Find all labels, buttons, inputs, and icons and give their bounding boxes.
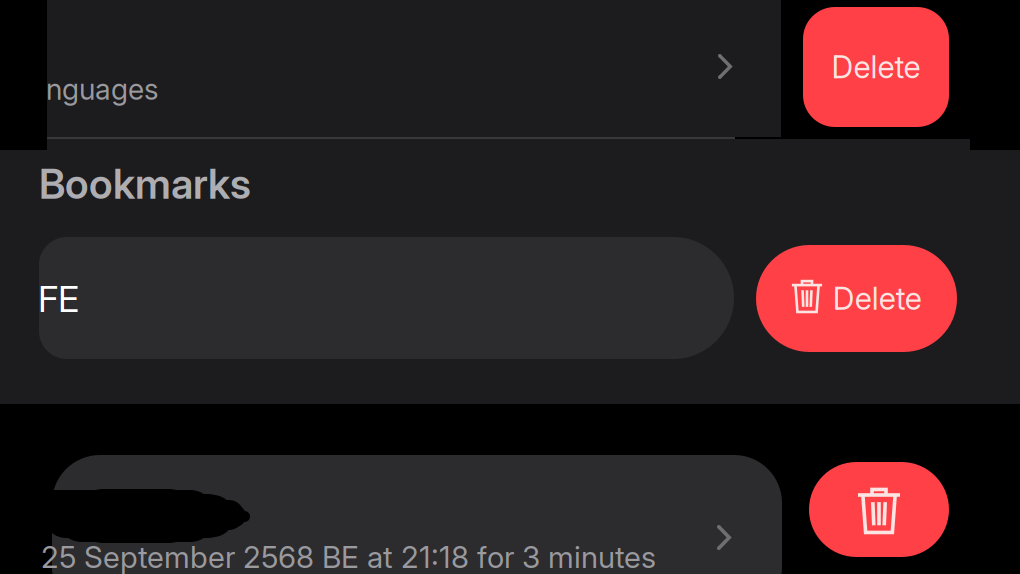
button[interactable]: Delete [809, 462, 949, 557]
staticText: nguages [46, 72, 159, 107]
staticText: Delete [831, 48, 920, 85]
staticText: Bookmarks [39, 159, 251, 209]
staticText: FE [38, 277, 79, 321]
button[interactable]: Delete [803, 7, 949, 127]
staticText: 25 September 2568 BE at 21:18 for 3 minu… [41, 539, 656, 574]
button[interactable]: Delete [756, 245, 957, 352]
staticText: Delete [833, 280, 922, 317]
